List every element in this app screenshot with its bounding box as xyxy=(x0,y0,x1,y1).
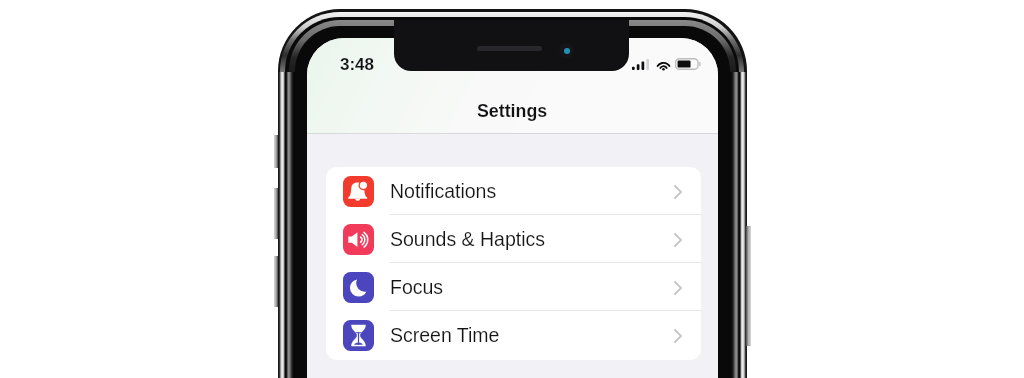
button[interactable]: Notifications xyxy=(326,167,701,215)
staticText: 3:48 xyxy=(340,55,375,74)
staticText: Sounds & Haptics xyxy=(390,228,546,250)
button[interactable]: Screen Time xyxy=(326,311,701,359)
button[interactable]: Focus xyxy=(326,263,701,311)
staticText: Screen Time xyxy=(390,324,500,346)
staticText: Settings xyxy=(477,101,548,121)
staticText: Focus xyxy=(390,276,444,298)
staticText: Notifications xyxy=(390,180,497,202)
button[interactable]: Sounds & Haptics xyxy=(326,215,701,263)
